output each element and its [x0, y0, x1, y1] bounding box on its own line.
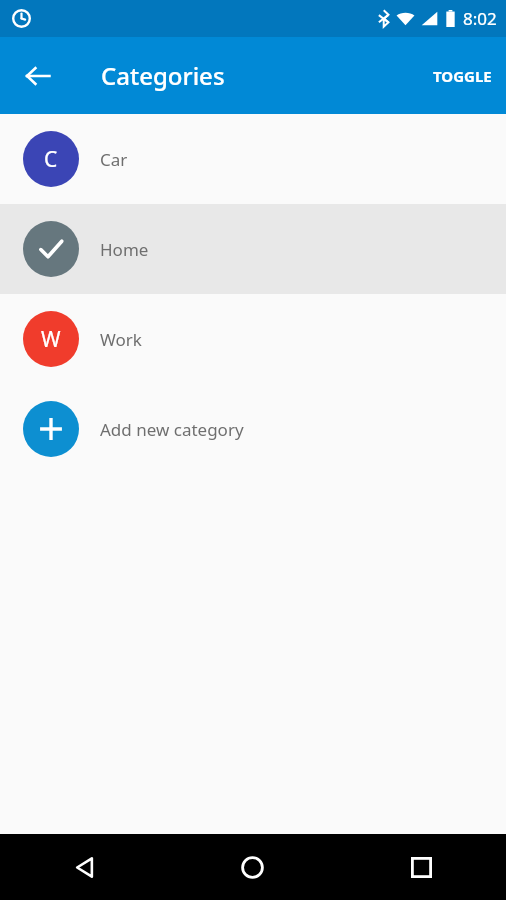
button[interactable]: Back — [0, 834, 168, 900]
button[interactable]: Add new category — [0, 384, 506, 474]
button[interactable]: Home — [168, 834, 337, 900]
button[interactable]: Home — [0, 204, 506, 294]
staticText: Categories — [101, 59, 225, 92]
staticText: TOGGLE — [433, 66, 492, 86]
staticText: C — [44, 145, 58, 174]
staticText: Car — [100, 148, 128, 171]
staticText: Add new category — [100, 418, 244, 441]
button[interactable]: W — [0, 294, 506, 384]
button[interactable]: Recent apps — [337, 834, 506, 900]
staticText: Work — [100, 328, 142, 351]
staticText: 8:02 — [463, 7, 497, 30]
button[interactable]: TOGGLE — [423, 56, 502, 96]
staticText: Home — [100, 238, 149, 261]
button[interactable]: Back — [12, 50, 64, 102]
button[interactable]: C — [0, 114, 506, 204]
staticText: W — [41, 325, 61, 354]
